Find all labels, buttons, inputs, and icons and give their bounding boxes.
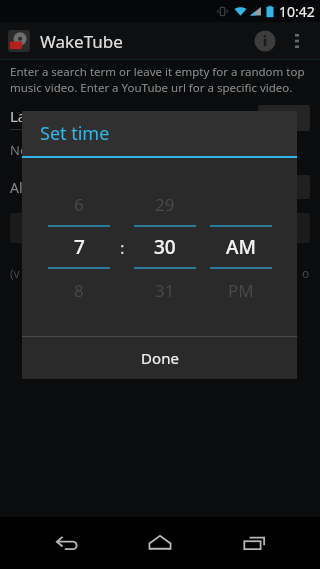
staticText: AM	[226, 234, 256, 260]
staticText: 29	[155, 193, 175, 216]
staticText: Help	[271, 110, 298, 126]
staticText: Ne	[10, 141, 28, 159]
staticText: 30	[154, 234, 176, 260]
staticText: (v	[10, 265, 20, 281]
staticText: 10:42	[279, 2, 315, 21]
button[interactable]: Home	[133, 517, 187, 569]
button[interactable]: Info	[248, 24, 282, 58]
button[interactable]: Help	[258, 105, 310, 131]
button[interactable]: 29	[134, 183, 196, 311]
staticText: Set time	[40, 121, 110, 146]
button[interactable]	[10, 213, 310, 243]
staticText: 6	[74, 193, 84, 216]
staticText: Lady G	[10, 106, 58, 126]
button[interactable]: Recent apps	[227, 517, 281, 569]
button[interactable]: More options	[282, 26, 312, 56]
staticText: WakeTube	[40, 30, 123, 53]
staticText: o	[302, 265, 310, 281]
staticText: Ala	[10, 178, 31, 197]
staticText: 7	[74, 234, 85, 260]
staticText: PM	[228, 279, 254, 302]
staticText: 8	[74, 279, 84, 302]
button[interactable]: Done	[22, 337, 297, 379]
button[interactable]	[266, 175, 310, 199]
button[interactable]: 6	[48, 183, 110, 311]
staticText: Enter a search term or leave it empty fo…	[10, 64, 310, 95]
button[interactable]: AM	[210, 183, 272, 311]
button[interactable]: Back	[40, 517, 94, 569]
staticText: :	[120, 236, 125, 259]
staticText: 31	[155, 279, 175, 302]
staticText: Done	[141, 348, 179, 368]
